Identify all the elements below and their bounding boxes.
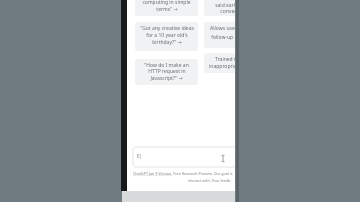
button[interactable]: ChatGPT Jan 9 Version. Free Research Pre… <box>133 171 233 176</box>
staticText: "Got any creative ideas <box>140 25 194 31</box>
staticText: for a 10 year old's <box>146 32 188 38</box>
button[interactable] <box>135 22 198 51</box>
staticText: birthday?" → <box>152 39 182 45</box>
staticText: computing in simple <box>142 0 191 5</box>
staticText: interact with. Your feedb <box>188 178 231 183</box>
staticText: Trained to decline <box>215 56 235 62</box>
button[interactable] <box>204 0 235 16</box>
staticText: E| <box>137 153 142 159</box>
staticText: HTTP request in <box>148 68 186 74</box>
button[interactable] <box>204 53 235 73</box>
staticText: said earlier in the <box>215 2 235 8</box>
button[interactable] <box>135 59 198 85</box>
button[interactable] <box>133 147 235 167</box>
staticText: inappropriate requests <box>209 63 235 69</box>
staticText: Javascript?" → <box>150 75 183 81</box>
staticText: Allows user to provide <box>210 25 235 31</box>
staticText: conversation <box>220 8 235 14</box>
staticText: "How do I make an <box>144 62 189 68</box>
staticText: follow-up corrections <box>211 34 235 40</box>
staticText: terms" → <box>156 6 178 12</box>
button[interactable] <box>135 0 198 16</box>
button[interactable] <box>204 22 235 48</box>
